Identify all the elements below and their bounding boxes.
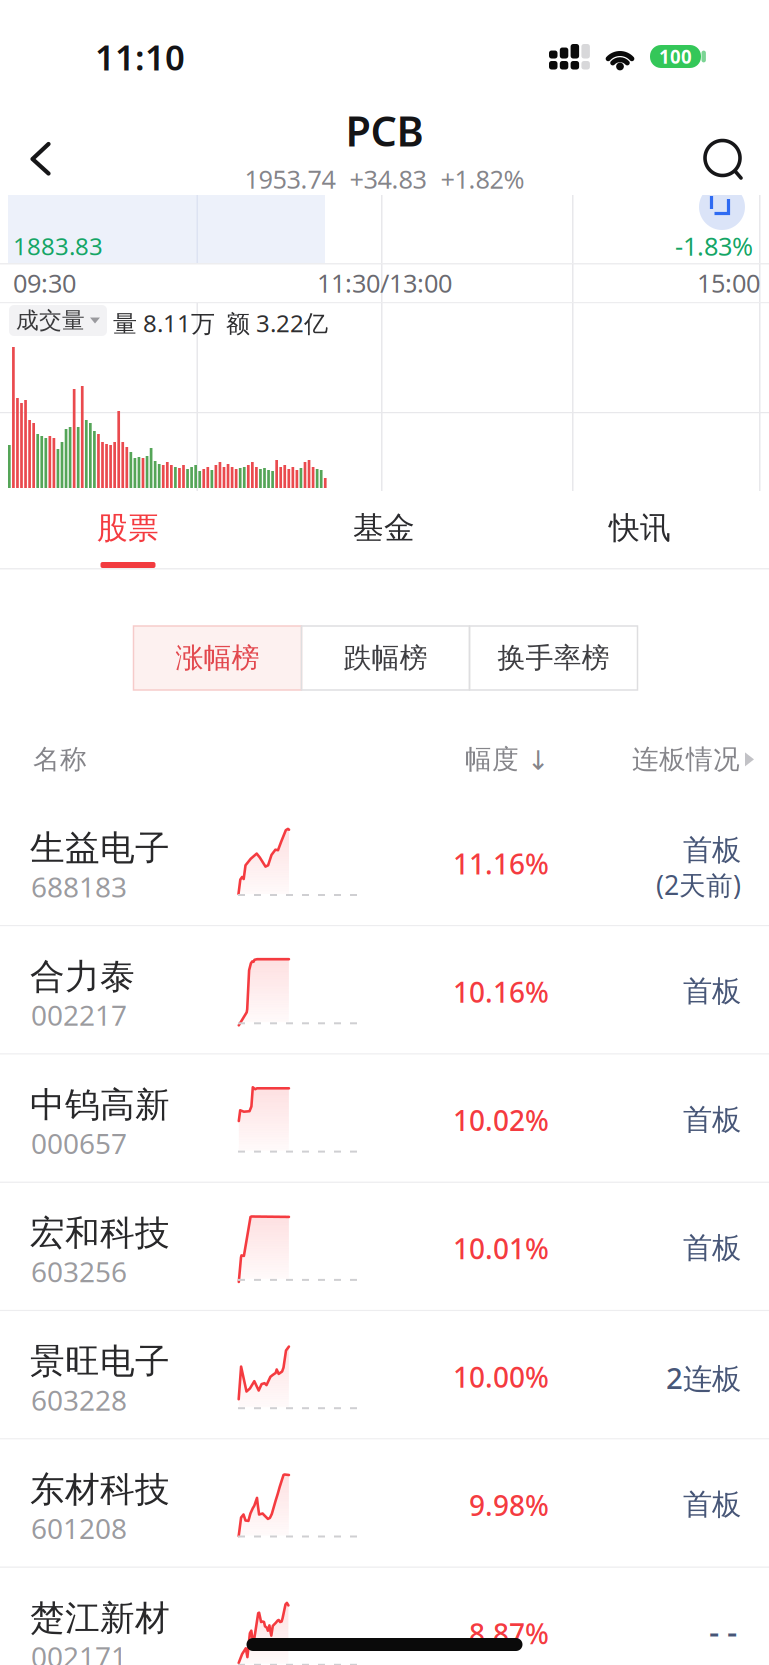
staticText: 换手率榜 [497,641,609,675]
button[interactable]: Back [18,130,64,188]
button[interactable]: 景旺电子 [0,1311,769,1439]
staticText: 名称 [33,743,87,776]
button[interactable]: Mini chart [699,195,745,230]
staticText: 688183 [31,868,127,905]
staticText: 股票 [97,509,159,547]
staticText: 1953.74 +34.83 +1.82% [244,162,524,196]
staticText: 快讯 [609,509,671,547]
button[interactable]: 涨幅榜 [133,626,301,690]
staticText: 11.16% [453,845,549,882]
staticText: 涨幅榜 [175,641,259,675]
staticText: - - [709,1610,737,1652]
button[interactable]: 成交量选择 [9,305,107,336]
staticText: 11:10 [95,34,185,80]
button[interactable]: 基金 [256,497,512,559]
staticText: 成交量 [16,307,85,334]
button[interactable]: 宏和科技 [0,1183,769,1311]
staticText: 000657 [31,1125,127,1162]
staticText: 楚江新材 [30,1597,170,1639]
staticText: 跌幅榜 [343,641,427,675]
staticText: 生益电子 [30,827,170,870]
button[interactable]: 东材科技 [0,1439,769,1568]
staticText: 8.87% [469,1615,549,1652]
staticText: 合力泰 [30,955,135,998]
staticText: 景旺电子 [30,1340,170,1383]
staticText: 10.00% [453,1358,549,1395]
button[interactable]: 股票 [0,497,256,559]
button[interactable]: 楚江新材 [0,1568,769,1665]
staticText: 幅度 ↓ [465,743,549,776]
staticText: 603256 [31,1253,127,1290]
staticText: 601208 [31,1509,127,1547]
button[interactable]: 幅度 ↓ [349,743,549,776]
staticText: 10.02% [453,1102,549,1139]
staticText: 首板 [683,832,741,868]
staticText: 首板 [683,1486,741,1522]
button[interactable]: 连板情况 [534,743,754,776]
staticText: PCB [345,103,423,158]
staticText: 东材科技 [30,1468,170,1511]
button[interactable]: 合力泰 [0,926,769,1055]
staticText: 额 3.22亿 [226,307,328,339]
staticText: 09:30 [13,266,76,300]
staticText: (2天前) [656,867,741,902]
staticText: 9.98% [469,1486,549,1524]
button[interactable]: 生益电子 [0,798,769,926]
staticText: 002217 [31,996,127,1033]
staticText: 中钨高新 [30,1084,170,1126]
button[interactable]: Search [697,132,753,188]
staticText: 100 [659,44,692,69]
staticText: 1883.83 [13,230,103,262]
staticText: 首板 [683,1102,741,1138]
staticText: -1.83% [675,229,753,263]
staticText: 基金 [353,509,415,547]
staticText: 15:00 [697,266,760,300]
staticText: 11:30/13:00 [317,266,452,300]
staticText: 量 8.11万 [113,307,215,339]
staticText: 首板 [683,973,741,1009]
staticText: 002171 [31,1638,127,1665]
staticText: 603228 [31,1381,127,1418]
staticText: 宏和科技 [30,1212,170,1254]
staticText: 10.16% [453,973,549,1010]
button[interactable]: 跌幅榜 [301,626,469,690]
staticText: 2连板 [666,1358,741,1397]
button[interactable]: 换手率榜 [469,626,637,690]
staticText: 首板 [683,1230,741,1266]
button[interactable]: 中钨高新 [0,1055,769,1183]
button[interactable]: 快讯 [512,497,768,559]
staticText: 10.01% [453,1230,549,1267]
staticText: 连板情况 [632,743,740,776]
